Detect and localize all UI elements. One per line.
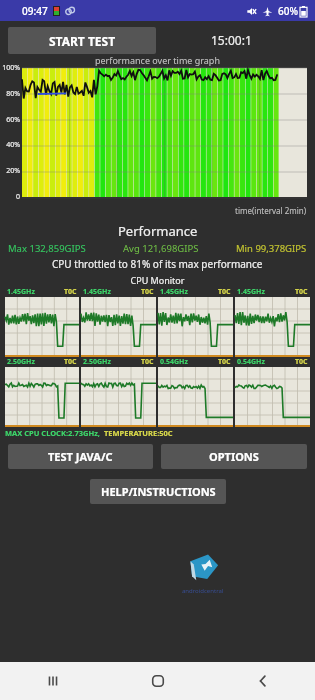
button[interactable]: START TEST — [8, 27, 156, 54]
button[interactable]: HELP/INSTRUCTIONS — [90, 479, 226, 504]
staticText: 60% — [0, 115, 20, 125]
staticText: 0 — [0, 192, 20, 202]
staticText: 0.54GHz — [237, 357, 265, 367]
staticText: performance over time graph — [95, 54, 220, 66]
staticText: 1.45GHz — [160, 287, 188, 297]
staticText: 1.45GHz — [237, 287, 265, 297]
staticText: 20% — [0, 166, 20, 176]
staticText: CPU Monitor — [0, 274, 315, 286]
staticText: 1.45GHz — [83, 287, 111, 297]
staticText: 2.50GHz — [7, 357, 35, 367]
button[interactable]: Back — [210, 662, 315, 700]
staticText: MAX CPU CLOCK:2.73GHz, — [5, 428, 101, 438]
staticText: T0C — [64, 287, 77, 297]
button[interactable]: TEST JAVA/C — [8, 444, 153, 469]
button[interactable]: OPTIONS — [161, 444, 307, 469]
staticText: T0C — [295, 287, 308, 297]
staticText: T0C — [141, 287, 154, 297]
staticText: T0C — [218, 287, 231, 297]
button[interactable]: Recent apps — [0, 662, 105, 700]
staticText: Min 99,378GIPS — [236, 242, 307, 255]
staticText: 60% — [278, 4, 298, 18]
staticText: time(interval 2min) — [235, 205, 307, 216]
staticText: 40% — [0, 140, 20, 150]
staticText: T0C — [64, 357, 77, 367]
staticText: 09:47 — [22, 4, 48, 18]
staticText: HELP/INSTRUCTIONS — [101, 484, 216, 499]
staticText: T0C — [218, 357, 231, 367]
staticText: Max 132,859GIPS — [8, 242, 86, 255]
staticText: 0.54GHz — [160, 357, 188, 367]
staticText: OPTIONS — [209, 449, 259, 464]
staticText: androidcentral — [182, 587, 224, 595]
staticText: TEST JAVA/C — [48, 449, 113, 464]
staticText: Avg 121,698GIPS — [123, 242, 199, 255]
staticText: T0C — [295, 357, 308, 367]
staticText: 80% — [0, 89, 20, 99]
staticText: 1.45GHz — [7, 287, 35, 297]
staticText: 2.50GHz — [83, 357, 111, 367]
staticText: CPU throttled to 81% of its max performa… — [52, 257, 263, 271]
staticText: 100% — [0, 63, 20, 73]
staticText: T0C — [141, 357, 154, 367]
staticText: Performance — [118, 222, 198, 240]
staticText: START TEST — [49, 33, 116, 49]
button[interactable]: Home — [105, 662, 210, 700]
staticText: 15:00:1 — [211, 32, 252, 48]
staticText: TEMPERATURE:50C — [104, 428, 173, 438]
